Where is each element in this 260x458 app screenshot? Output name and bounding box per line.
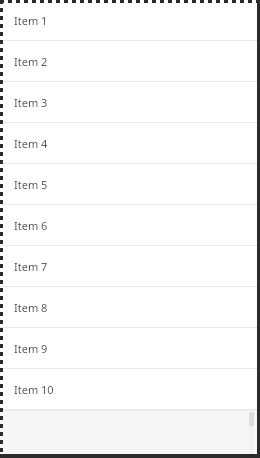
- button[interactable]: Item 1: [0, 0, 260, 41]
- button[interactable]: Item 5: [0, 164, 260, 205]
- button[interactable]: Item 3: [0, 82, 260, 123]
- staticText: Item 2: [14, 54, 48, 69]
- staticText: Item 3: [14, 95, 48, 110]
- button[interactable]: Item 7: [0, 246, 260, 287]
- staticText: Item 5: [14, 177, 48, 192]
- staticText: Item 4: [14, 136, 48, 151]
- staticText: Item 9: [14, 341, 48, 356]
- staticText: Item 10: [14, 382, 54, 397]
- button[interactable]: Item 10: [0, 369, 260, 410]
- staticText: Item 7: [14, 259, 48, 274]
- button[interactable]: Item 6: [0, 205, 260, 246]
- staticText: Item 6: [14, 218, 48, 233]
- button[interactable]: Item 9: [0, 328, 260, 369]
- button[interactable]: Item 8: [0, 287, 260, 328]
- button[interactable]: Item 2: [0, 41, 260, 82]
- button[interactable]: Item 4: [0, 123, 260, 164]
- staticText: Item 8: [14, 300, 48, 315]
- staticText: Item 1: [14, 13, 48, 28]
